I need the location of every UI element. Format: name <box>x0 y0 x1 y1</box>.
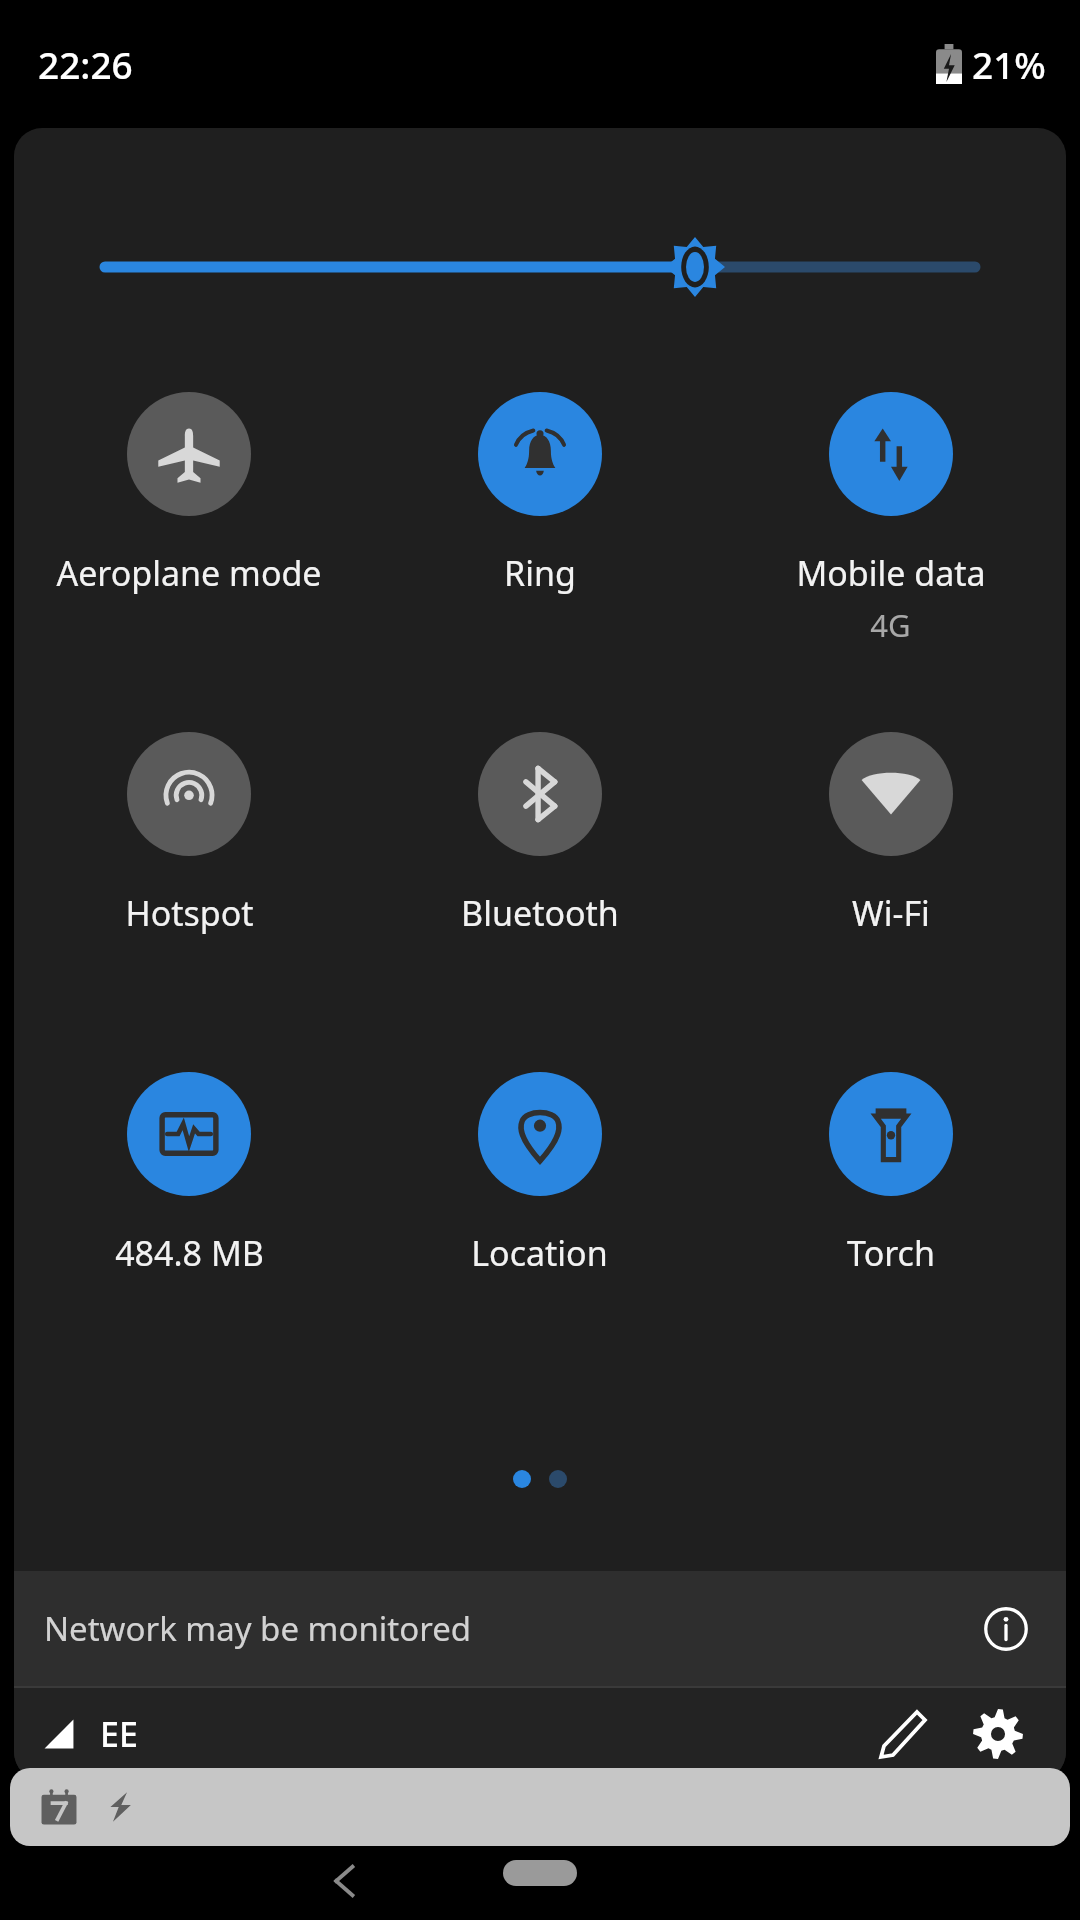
button[interactable]: Mobile data <box>715 338 1066 678</box>
button[interactable]: Torch <box>715 1018 1066 1358</box>
staticText: 484.8 MB <box>115 1230 264 1276</box>
staticText: Network may be monitored <box>44 1606 472 1651</box>
staticText: EE <box>100 1711 138 1757</box>
button[interactable]: Ring <box>364 338 715 678</box>
button[interactable]: Network may be monitored <box>14 1571 1066 1686</box>
staticText: Wi-Fi <box>852 890 930 936</box>
button[interactable]: Settings <box>950 1688 1046 1780</box>
button[interactable]: Home <box>503 1860 577 1886</box>
button[interactable]: EE <box>40 1711 138 1757</box>
staticText: Mobile data <box>796 550 986 596</box>
button[interactable]: Bluetooth <box>364 678 715 1018</box>
button[interactable]: Location <box>364 1018 715 1358</box>
staticText: Ring <box>504 550 576 596</box>
button[interactable]: Wi-Fi <box>715 678 1066 1018</box>
button[interactable]: 484.8 MB <box>14 1018 364 1358</box>
staticText: Hotspot <box>125 890 254 936</box>
button[interactable]: Aeroplane mode <box>14 338 364 678</box>
button[interactable] <box>10 1768 1070 1846</box>
button[interactable]: Hotspot <box>14 678 364 1018</box>
staticText: Torch <box>847 1230 935 1276</box>
button[interactable]: Brightness <box>14 128 1066 338</box>
staticText: 22:26 <box>38 39 133 89</box>
button[interactable]: Edit <box>854 1688 950 1780</box>
button[interactable]: Back <box>310 1846 380 1916</box>
staticText: 4G <box>870 604 911 646</box>
staticText: Aeroplane mode <box>56 550 322 596</box>
staticText: 21% <box>972 39 1046 89</box>
staticText: Bluetooth <box>461 890 619 936</box>
button[interactable]: Info <box>970 1593 1042 1665</box>
staticText: Location <box>471 1230 608 1276</box>
